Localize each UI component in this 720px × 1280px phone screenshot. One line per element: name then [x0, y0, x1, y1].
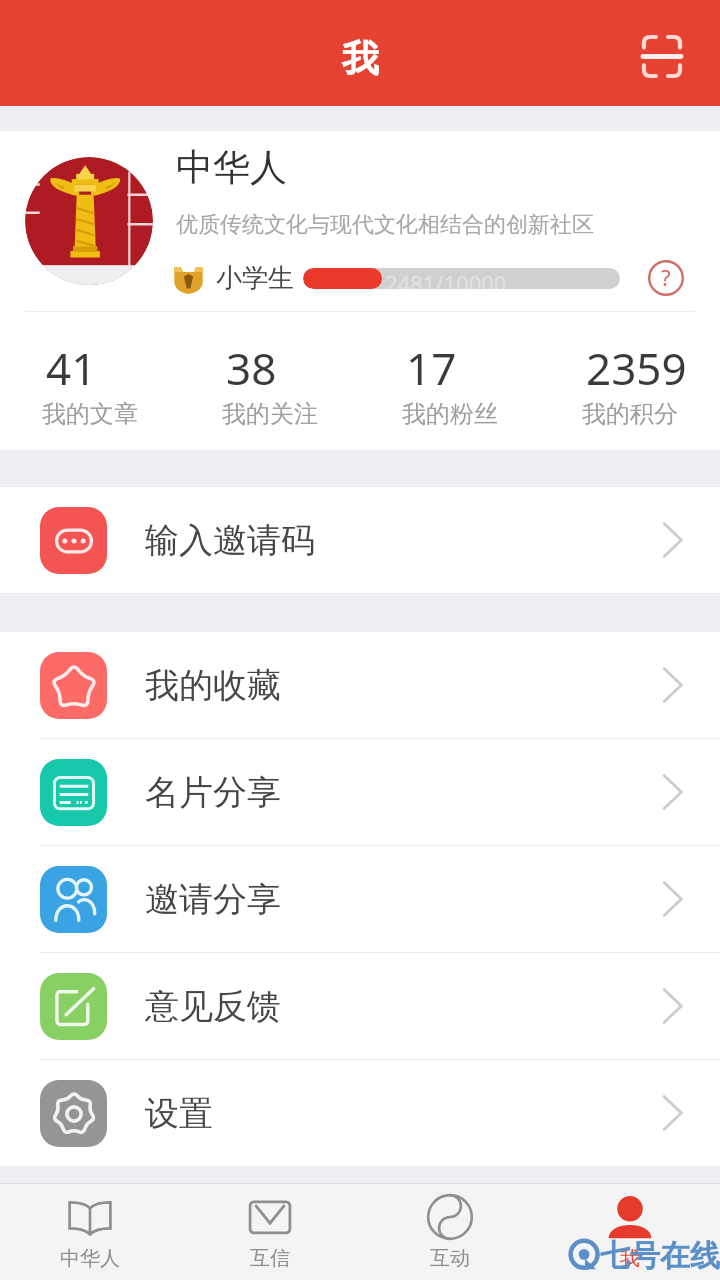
staticText: 互动 [430, 1246, 470, 1271]
button[interactable]: Scan QR code [630, 24, 694, 88]
staticText: 我 [342, 35, 379, 82]
button[interactable]: 设置 [0, 1060, 720, 1166]
staticText: 我的积分 [582, 399, 678, 429]
button[interactable]: 17 [360, 312, 540, 450]
staticText: 38 [226, 338, 277, 398]
button[interactable]: 中华人 [0, 1184, 180, 1280]
button[interactable]: 38 [180, 312, 360, 450]
staticText: 七号在线 [600, 1237, 720, 1275]
staticText: 输入邀请码 [145, 519, 315, 562]
button[interactable]: Level help [645, 257, 687, 299]
button[interactable]: 我的收藏 [0, 632, 720, 738]
staticText: 优质传统文化与现代文化相结合的创新社区 [176, 211, 594, 239]
staticText: 2359 [586, 338, 687, 398]
staticText: ? [661, 262, 671, 292]
staticText: 名片分享 [145, 771, 281, 814]
button[interactable]: 2359 [540, 312, 720, 450]
staticText: 意见反馈 [145, 985, 281, 1028]
staticText: 我的关注 [222, 399, 318, 429]
staticText: 我的收藏 [145, 664, 281, 707]
staticText: 设置 [145, 1092, 213, 1135]
staticText: 41 [46, 338, 97, 398]
staticText: 邀请分享 [145, 878, 281, 921]
button[interactable]: Profile avatar [25, 157, 153, 285]
button[interactable]: 输入邀请码 [0, 487, 720, 593]
button[interactable]: 邀请分享 [0, 846, 720, 952]
button[interactable]: 名片分享 [0, 739, 720, 845]
staticText: 中华人 [60, 1246, 120, 1271]
staticText: 我的文章 [42, 399, 138, 429]
staticText: 中华人 [176, 144, 287, 191]
staticText: 17 [406, 338, 457, 398]
staticText: 小学生 [216, 262, 294, 295]
staticText: 互信 [250, 1246, 290, 1271]
staticText: 我 [620, 1246, 640, 1271]
staticText: 我的粉丝 [402, 399, 498, 429]
button[interactable]: 41 [0, 312, 180, 450]
button[interactable]: 我 [540, 1184, 720, 1280]
button[interactable]: 意见反馈 [0, 953, 720, 1059]
button[interactable]: 互信 [180, 1184, 360, 1280]
button[interactable]: 互动 [360, 1184, 540, 1280]
staticText: 2481/10000 [385, 268, 507, 289]
